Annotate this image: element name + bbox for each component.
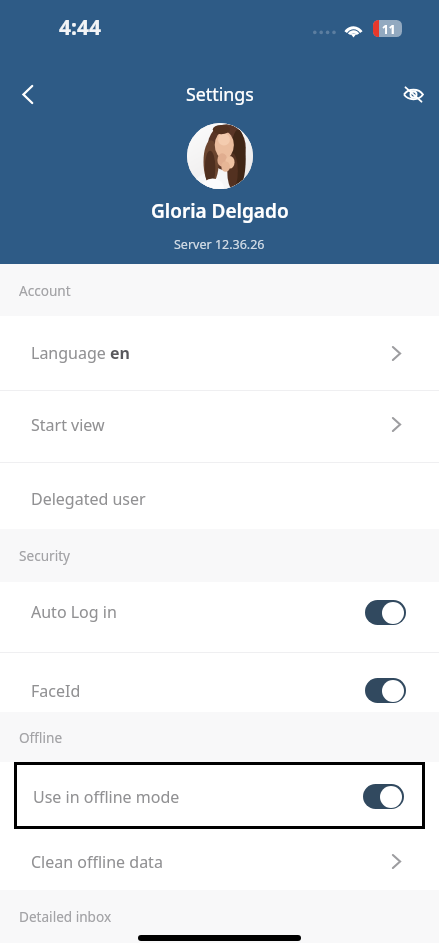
button[interactable]: Delegated user — [0, 463, 439, 529]
button[interactable]: Use in offline mode — [17, 765, 422, 826]
button[interactable]: Auto Log in — [0, 582, 439, 652]
staticText: Server 12.36.26 — [174, 236, 265, 253]
staticText: Auto Log in — [31, 601, 117, 623]
staticText: Offline — [19, 728, 63, 747]
staticText: Settings — [186, 82, 254, 106]
button[interactable]: Hide password — [393, 74, 433, 114]
button[interactable]: Clean offline data — [0, 829, 439, 890]
staticText: FaceId — [31, 680, 81, 702]
button[interactable]: Language en — [0, 316, 439, 390]
staticText: Delegated user — [31, 488, 146, 510]
button[interactable]: FaceId — [0, 653, 439, 712]
staticText: Language en — [31, 342, 130, 364]
staticText: Account — [19, 281, 71, 300]
staticText: Start view — [31, 414, 105, 436]
staticText: Clean offline data — [31, 851, 163, 873]
staticText: Detailed inbox — [19, 907, 112, 926]
staticText: Gloria Delgado — [151, 198, 289, 224]
staticText: Security — [19, 546, 71, 565]
button[interactable]: Back — [8, 74, 48, 114]
staticText: 4:44 — [59, 13, 101, 42]
button[interactable]: Start view — [0, 391, 439, 462]
staticText: Use in offline mode — [33, 786, 180, 808]
staticText: 11 — [382, 21, 396, 37]
